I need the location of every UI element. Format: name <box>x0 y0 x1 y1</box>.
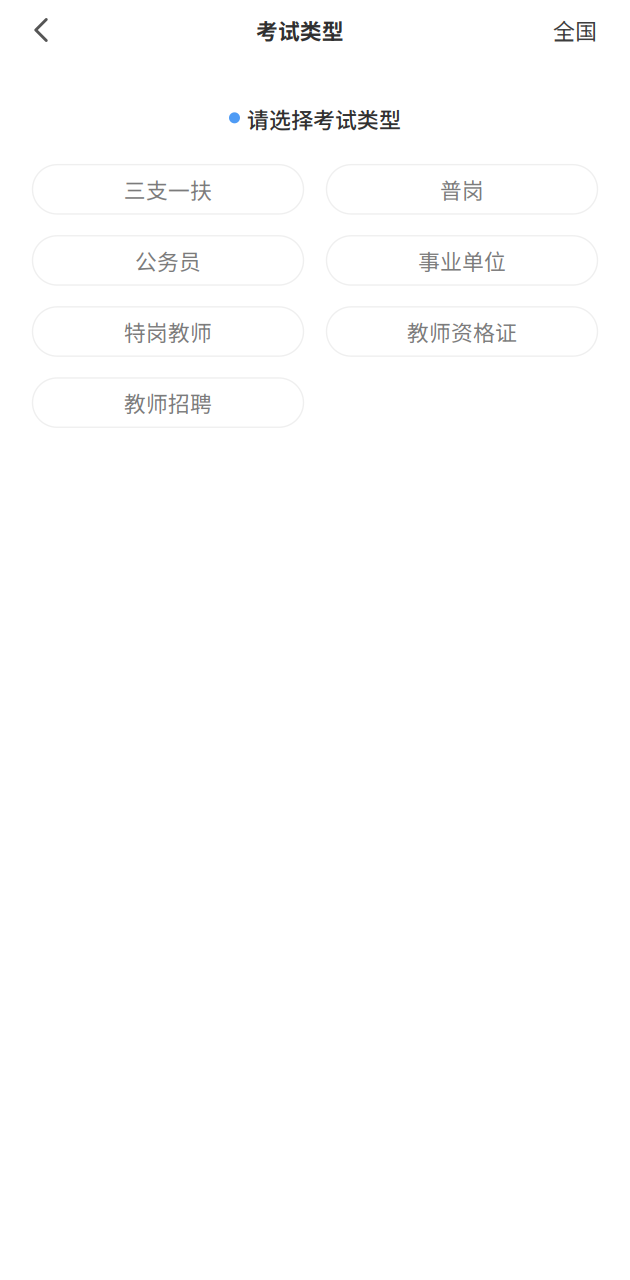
button[interactable]: Back <box>0 0 82 60</box>
staticText: 事业单位 <box>418 245 506 276</box>
staticText: 考试类型 <box>256 14 344 46</box>
button[interactable]: 事业单位 <box>326 236 597 285</box>
staticText: 公务员 <box>135 245 201 276</box>
staticText: 三支一扶 <box>124 174 212 205</box>
staticText: 请选择考试类型 <box>247 103 401 135</box>
staticText: 教师招聘 <box>124 387 212 418</box>
staticText: 教师资格证 <box>407 316 517 347</box>
staticText: 特岗教师 <box>124 316 212 347</box>
button[interactable]: 三支一扶 <box>32 165 303 214</box>
staticText: 普岗 <box>440 174 484 205</box>
staticText: 全国 <box>553 14 597 46</box>
button[interactable]: 特岗教师 <box>32 307 303 356</box>
button[interactable]: 教师招聘 <box>32 378 303 427</box>
button[interactable]: 全国 <box>520 0 630 60</box>
button[interactable]: 普岗 <box>326 165 597 214</box>
button[interactable]: 教师资格证 <box>326 307 597 356</box>
button[interactable]: 公务员 <box>32 236 303 285</box>
